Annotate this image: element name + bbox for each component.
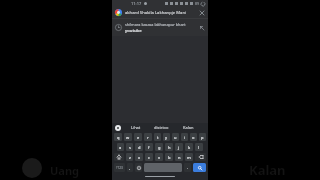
- button[interactable]: r: [144, 133, 152, 141]
- staticText: d: [138, 145, 141, 150]
- button[interactable]: n: [175, 153, 183, 161]
- staticText: b: [168, 155, 171, 160]
- staticText: i: [184, 135, 186, 140]
- staticText: c: [148, 155, 150, 160]
- button[interactable]: Numbers: [114, 163, 125, 172]
- button[interactable]: z: [126, 153, 133, 161]
- button[interactable]: Use this suggestion: [198, 24, 205, 31]
- staticText: Uang: [50, 163, 80, 178]
- button[interactable]: x: [135, 153, 143, 161]
- staticText: s: [129, 145, 131, 150]
- staticText: n: [178, 155, 181, 160]
- staticText: shilmara kasasa lakhanapur bhart: [125, 22, 186, 27]
- staticText: ?123: [116, 166, 123, 170]
- button[interactable]: j: [175, 143, 183, 151]
- staticText: e: [137, 135, 140, 140]
- staticText: v: [158, 155, 161, 160]
- staticText: distrioo: [154, 125, 169, 130]
- button[interactable]: Lihat: [128, 124, 144, 131]
- staticText: 11:17: [131, 1, 142, 6]
- staticText: z: [129, 155, 131, 160]
- button[interactable]: m: [185, 153, 193, 161]
- staticText: r: [147, 135, 149, 140]
- staticText: Lihat: [131, 125, 141, 130]
- staticText: 89: [195, 1, 200, 6]
- button[interactable]: g: [155, 143, 163, 151]
- button[interactable]: e: [134, 133, 142, 141]
- staticText: t: [157, 135, 159, 140]
- button[interactable]: Search engine: [112, 7, 208, 18]
- staticText: m: [187, 155, 191, 160]
- button[interactable]: Comma: [127, 163, 133, 172]
- button[interactable]: Kalan: [180, 124, 197, 131]
- button[interactable]: Emoji: [135, 163, 142, 172]
- staticText: o: [192, 135, 195, 140]
- button[interactable]: u: [172, 133, 179, 141]
- staticText: x: [138, 155, 141, 160]
- button[interactable]: l: [195, 143, 203, 151]
- button[interactable]: f: [145, 143, 153, 151]
- button[interactable]: y: [163, 133, 170, 141]
- staticText: g: [158, 145, 161, 150]
- button[interactable]: a: [117, 143, 124, 151]
- staticText: k: [188, 145, 191, 150]
- staticText: u: [174, 135, 177, 140]
- button[interactable]: c: [145, 153, 153, 161]
- button[interactable]: b: [165, 153, 173, 161]
- staticText: h: [168, 145, 171, 150]
- other: Search engine: [115, 9, 122, 16]
- other: Recent search: [115, 24, 122, 31]
- staticText: y: [165, 135, 168, 140]
- staticText: Kalan: [249, 161, 286, 179]
- button[interactable]: i: [181, 133, 188, 141]
- button[interactable]: v: [155, 153, 163, 161]
- staticText: .: [187, 165, 189, 170]
- button[interactable]: o: [190, 133, 197, 141]
- button[interactable]: Search: [193, 163, 206, 172]
- button[interactable]: h: [165, 143, 173, 151]
- button[interactable]: k: [185, 143, 193, 151]
- button[interactable]: Backspace: [195, 153, 206, 161]
- staticText: Kalan: [183, 125, 194, 130]
- button[interactable]: Period: [184, 163, 191, 172]
- button[interactable]: Google assistant: [115, 125, 121, 131]
- button[interactable]: Space: [144, 163, 182, 172]
- staticText: j: [178, 145, 180, 150]
- button[interactable]: d: [135, 143, 143, 151]
- button[interactable]: distrioo: [151, 124, 172, 131]
- staticText: akhard Shakila Lakhanpje Mani: [125, 10, 196, 16]
- staticText: youtube: [125, 28, 142, 34]
- staticText: p: [201, 135, 204, 140]
- button[interactable]: p: [199, 133, 206, 141]
- button[interactable]: s: [126, 143, 133, 151]
- staticText: ,: [129, 165, 131, 170]
- button[interactable]: Recent search: [112, 19, 208, 36]
- staticText: q: [117, 135, 120, 140]
- button[interactable]: Clear query: [198, 9, 205, 16]
- button[interactable]: q: [114, 133, 122, 141]
- staticText: w: [126, 135, 130, 140]
- button[interactable]: Shift: [114, 153, 124, 161]
- button[interactable]: t: [154, 133, 161, 141]
- staticText: a: [119, 145, 122, 150]
- staticText: f: [148, 145, 150, 150]
- staticText: l: [198, 145, 200, 150]
- button[interactable]: w: [124, 133, 132, 141]
